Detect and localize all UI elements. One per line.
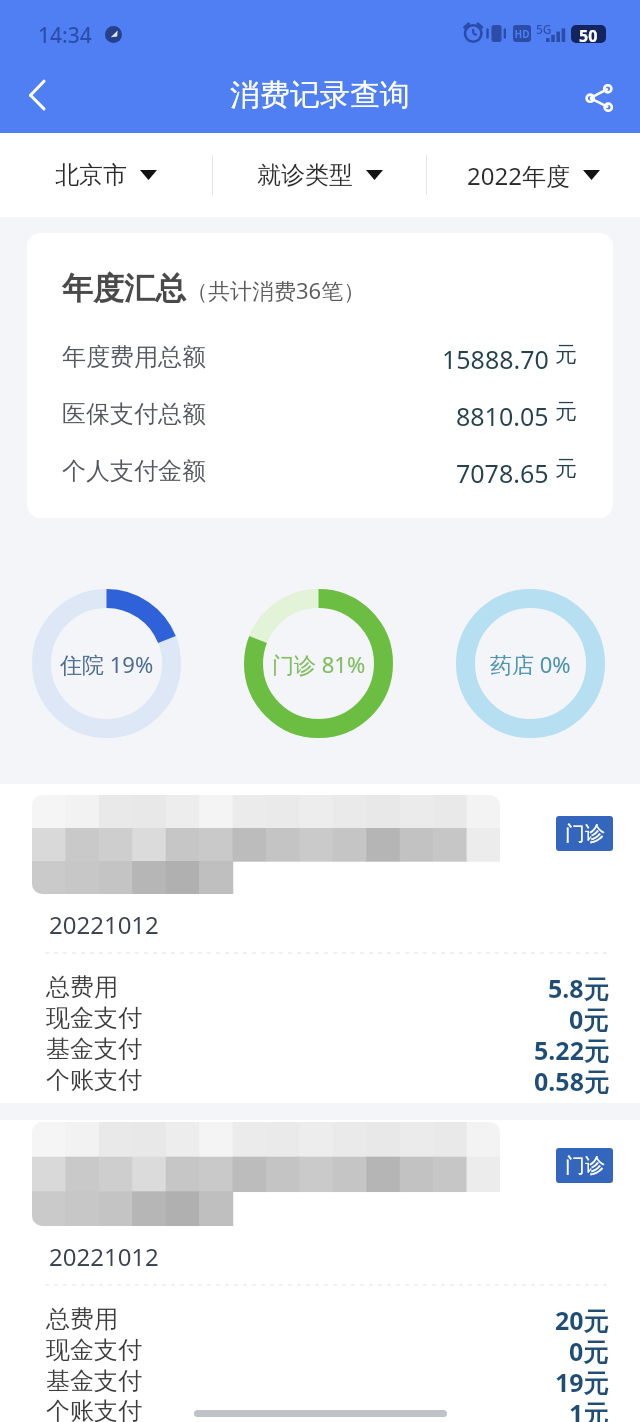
staticText: 个账支付 (46, 1396, 142, 1422)
staticText: 北京市 (55, 160, 127, 190)
staticText: 0元 (569, 1002, 609, 1033)
staticText: 基金支付 (46, 1034, 142, 1064)
staticText: 医保支付总额 (62, 399, 206, 427)
staticText: 2022年度 (467, 159, 570, 192)
button[interactable]: 门诊 (556, 1148, 613, 1183)
staticText: 门诊 (565, 821, 605, 846)
staticText: 元 (555, 398, 577, 426)
staticText: 7078.65 (456, 456, 549, 484)
staticText: 门诊 81% (272, 649, 366, 679)
staticText: 15888.70 (442, 342, 549, 370)
button[interactable]: 门诊 (0, 1120, 640, 1422)
staticText: 现金支付 (46, 1003, 142, 1033)
staticText: 年度汇总 (62, 269, 186, 308)
staticText: 药店 0% (490, 649, 571, 679)
staticText: 总费用 (46, 1304, 118, 1334)
staticText: 0元 (569, 1334, 609, 1365)
staticText: 现金支付 (46, 1335, 142, 1365)
staticText: 5.8元 (548, 971, 609, 1002)
staticText: 年度费用总额 (62, 342, 206, 370)
staticText: 就诊类型 (257, 160, 353, 190)
staticText: HD (513, 27, 531, 41)
staticText: 个人支付金额 (62, 456, 206, 484)
staticText: 19元 (555, 1365, 609, 1396)
staticText: 20元 (555, 1303, 609, 1334)
staticText: 20221012 (49, 908, 159, 941)
button[interactable]: 2022年度 (427, 133, 640, 217)
button[interactable]: 北京市 (0, 133, 212, 217)
button[interactable]: 就诊类型 (213, 133, 426, 217)
staticText: 5G (536, 21, 552, 37)
staticText: 50 (579, 25, 598, 43)
staticText: 0.58元 (534, 1064, 609, 1095)
staticText: 元 (555, 341, 577, 369)
staticText: 住院 19% (60, 649, 154, 679)
staticText: （共计消费36笔） (186, 275, 366, 305)
staticText: 1元 (569, 1396, 609, 1422)
staticText: 基金支付 (46, 1366, 142, 1396)
staticText: 总费用 (46, 972, 118, 1002)
staticText: 门诊 (565, 1153, 605, 1178)
staticText: 8810.05 (456, 399, 549, 427)
button[interactable]: 门诊 (556, 816, 613, 851)
button[interactable]: 门诊 (0, 784, 640, 1103)
button[interactable]: Share (573, 70, 635, 120)
staticText: 元 (555, 455, 577, 483)
staticText: 消费记录查询 (230, 76, 410, 114)
staticText: 5.22元 (534, 1033, 609, 1064)
staticText: 20221012 (49, 1240, 159, 1273)
staticText: 14:34 (38, 21, 92, 50)
button[interactable]: Back (6, 70, 69, 120)
staticText: 个账支付 (46, 1065, 142, 1095)
